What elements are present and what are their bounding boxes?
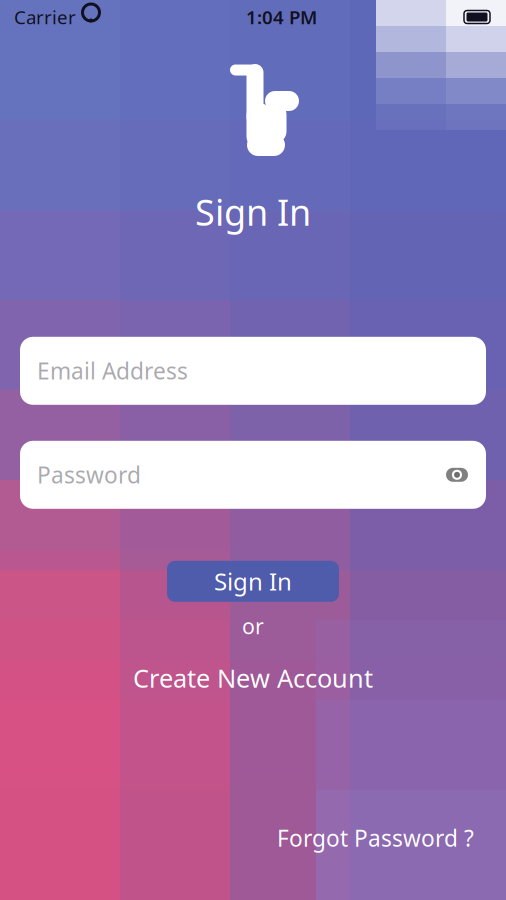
staticText: Sign In xyxy=(195,188,311,236)
staticText: Forgot Password ? xyxy=(277,823,474,853)
button[interactable]: Email Address xyxy=(20,337,486,405)
staticText: or xyxy=(242,612,264,640)
button[interactable]: Password xyxy=(20,441,486,509)
button[interactable]: Forgot Password ? xyxy=(271,818,480,858)
button[interactable]: Sign In xyxy=(167,561,339,602)
button[interactable]: Create New Account xyxy=(121,657,385,699)
staticText: Sign In xyxy=(214,565,292,597)
staticText: Password xyxy=(37,460,141,490)
staticText: 1:04 PM xyxy=(246,5,317,29)
staticText: Create New Account xyxy=(133,661,373,695)
staticText: Carrier xyxy=(14,5,76,29)
staticText: Email Address xyxy=(37,356,188,386)
